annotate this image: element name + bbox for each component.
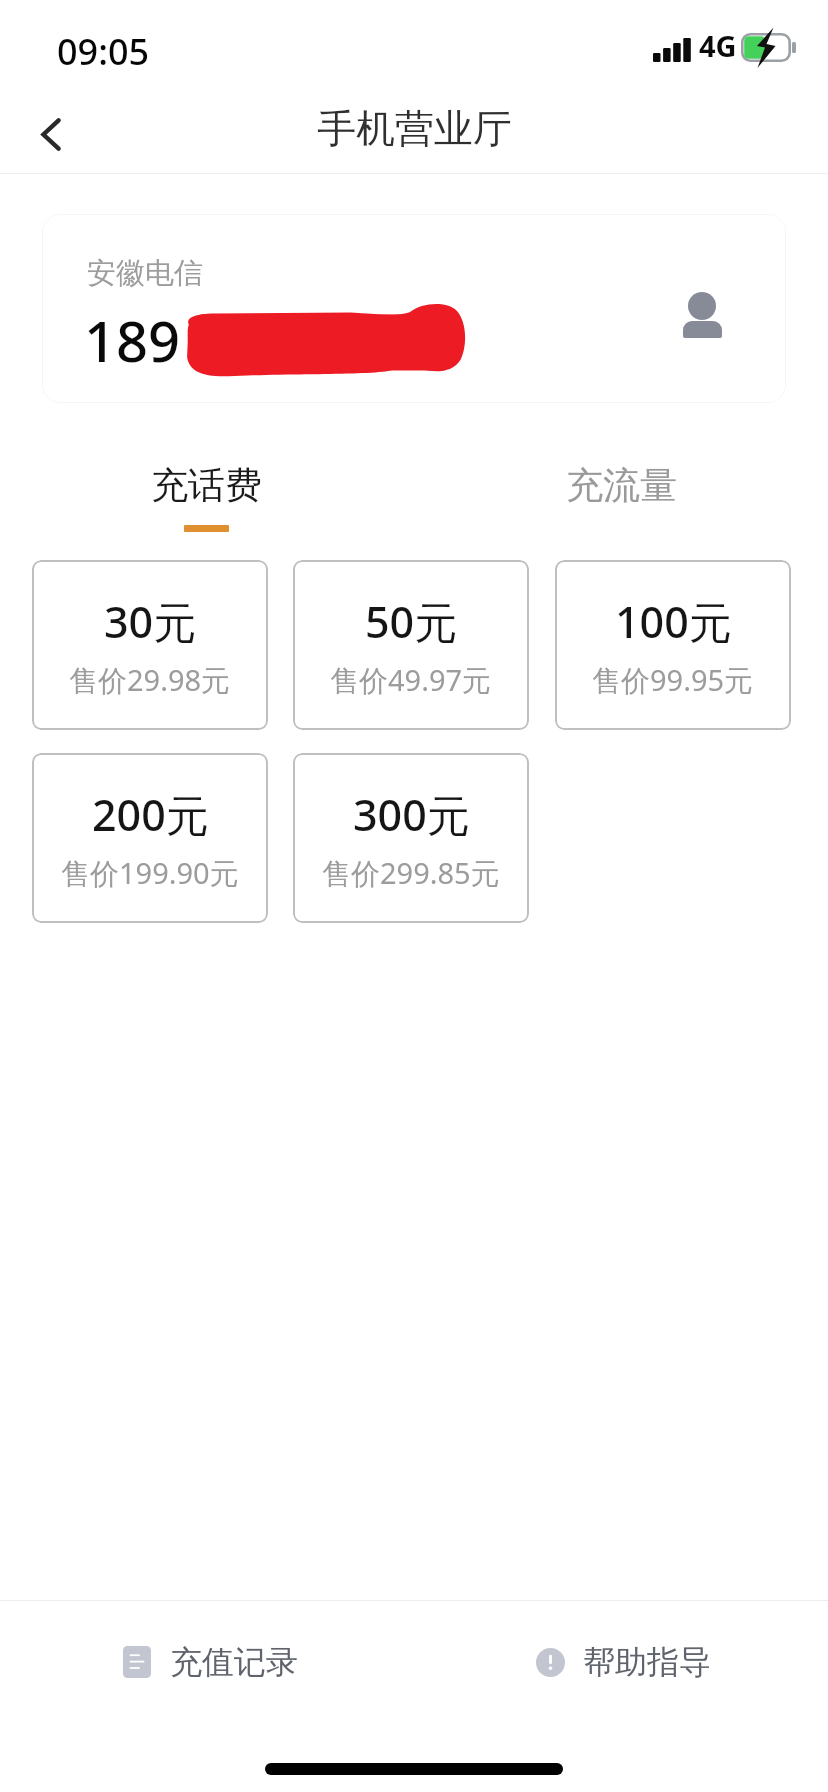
button[interactable]: 充流量: [501, 450, 741, 542]
staticText: 189: [84, 302, 181, 378]
staticText: 30元: [104, 592, 197, 651]
button[interactable]: 200元: [32, 753, 268, 923]
staticText: 100元: [615, 592, 732, 651]
staticText: 售价29.98元: [69, 660, 231, 700]
button[interactable]: 帮助指导: [522, 1628, 711, 1696]
staticText: 充值记录: [170, 1642, 298, 1682]
staticText: 4G: [699, 26, 737, 65]
staticText: 售价199.90元: [61, 853, 239, 893]
staticText: 售价299.85元: [322, 853, 500, 893]
button[interactable]: 安徽电信: [42, 214, 786, 403]
staticText: 充流量: [566, 462, 677, 509]
button[interactable]: 300元: [293, 753, 529, 923]
staticText: 50元: [365, 592, 458, 651]
button[interactable]: 充话费: [86, 450, 326, 542]
staticText: 200元: [92, 785, 209, 844]
staticText: 09:05: [57, 27, 150, 76]
button[interactable]: 30元: [32, 560, 268, 730]
button[interactable]: Back: [0, 91, 100, 177]
staticText: 充话费: [151, 462, 262, 509]
button[interactable]: 100元: [555, 560, 791, 730]
staticText: 售价99.95元: [592, 660, 754, 700]
staticText: 手机营业厅: [317, 104, 512, 153]
button[interactable]: 50元: [293, 560, 529, 730]
button[interactable]: 充值记录: [110, 1628, 298, 1696]
button[interactable]: Account profile: [662, 269, 746, 349]
staticText: 售价49.97元: [330, 660, 492, 700]
staticText: 300元: [353, 785, 470, 844]
staticText: 帮助指导: [583, 1642, 711, 1682]
staticText: 安徽电信: [87, 255, 203, 292]
